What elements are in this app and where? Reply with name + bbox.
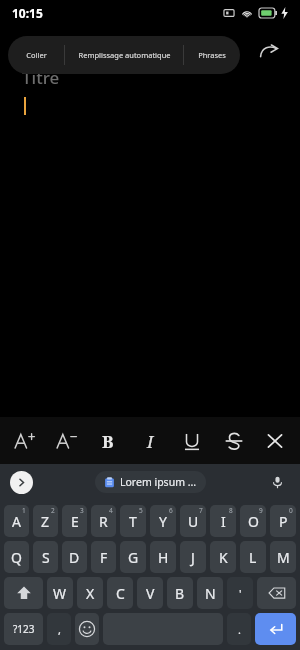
staticText: R bbox=[99, 512, 108, 531]
staticText: 8 bbox=[229, 506, 233, 515]
button[interactable]: C bbox=[107, 577, 133, 609]
button[interactable]: . bbox=[227, 613, 251, 645]
staticText: 9 bbox=[259, 506, 263, 515]
staticText: Coller bbox=[26, 50, 47, 60]
staticText: ' bbox=[239, 586, 242, 601]
button[interactable]: U bbox=[180, 505, 206, 537]
button[interactable]: J bbox=[180, 541, 206, 573]
button[interactable]: Phrases fréquentes bbox=[184, 36, 240, 74]
button[interactable]: I bbox=[210, 505, 236, 537]
button[interactable]: ' bbox=[227, 577, 253, 609]
button[interactable]: Effacer la mise en forme bbox=[258, 424, 292, 458]
staticText: . bbox=[238, 622, 241, 637]
button[interactable]: Rétablir bbox=[252, 34, 286, 68]
button[interactable]: M bbox=[270, 541, 296, 573]
staticText: D bbox=[69, 548, 80, 567]
staticText: U bbox=[188, 512, 199, 531]
button[interactable]: Barré bbox=[217, 424, 251, 458]
button[interactable]: G bbox=[120, 541, 146, 573]
button[interactable]: R bbox=[91, 505, 116, 537]
button[interactable]: W bbox=[47, 577, 73, 609]
staticText: X bbox=[86, 584, 95, 603]
button[interactable]: B bbox=[167, 577, 193, 609]
staticText: Lorem ipsum ... bbox=[120, 475, 197, 489]
staticText: J bbox=[191, 548, 195, 567]
button[interactable]: Q bbox=[4, 541, 29, 573]
staticText: 2 bbox=[51, 506, 55, 515]
staticText: A bbox=[12, 512, 21, 531]
staticText: 5 bbox=[139, 506, 143, 515]
staticText: 7 bbox=[199, 506, 203, 515]
button[interactable]: P bbox=[270, 505, 296, 537]
button[interactable]: Développer bbox=[10, 471, 33, 494]
button[interactable]: Remplissage automatique bbox=[65, 36, 183, 74]
staticText: Remplissage automatique bbox=[78, 50, 171, 60]
staticText: Y bbox=[159, 512, 167, 531]
staticText: Phrases fréquentes bbox=[184, 50, 240, 60]
staticText: , bbox=[58, 622, 61, 637]
staticText: E bbox=[71, 512, 79, 531]
staticText: 4 bbox=[109, 506, 113, 515]
staticText: Q bbox=[11, 548, 22, 567]
staticText: P bbox=[279, 512, 288, 531]
button[interactable]: F bbox=[91, 541, 116, 573]
button[interactable]: Saisie vocale bbox=[264, 469, 290, 495]
staticText: C bbox=[116, 584, 125, 603]
staticText: V bbox=[146, 584, 155, 603]
button[interactable]: O bbox=[240, 505, 266, 537]
staticText: H bbox=[158, 548, 169, 567]
staticText: W bbox=[53, 584, 67, 603]
button[interactable]: I bbox=[133, 424, 167, 458]
staticText: ?123 bbox=[13, 622, 35, 636]
button[interactable]: Lorem ipsum ... bbox=[95, 471, 206, 493]
button[interactable]: K bbox=[210, 541, 236, 573]
staticText: 0 bbox=[289, 506, 293, 515]
button[interactable]: H bbox=[150, 541, 176, 573]
button[interactable]: X bbox=[77, 577, 103, 609]
staticText: 6 bbox=[169, 506, 173, 515]
staticText: 10:15 bbox=[12, 5, 43, 21]
button[interactable]: Réduire la taille bbox=[50, 424, 84, 458]
button[interactable]: S bbox=[33, 541, 58, 573]
button[interactable]: Supprimer bbox=[257, 577, 296, 609]
staticText: F bbox=[100, 548, 108, 567]
staticText: O bbox=[248, 512, 259, 531]
button[interactable]: , bbox=[47, 613, 71, 645]
staticText: Z bbox=[41, 512, 50, 531]
staticText: T bbox=[129, 512, 137, 531]
staticText: I bbox=[221, 512, 226, 531]
button[interactable]: V bbox=[137, 577, 163, 609]
button[interactable]: Z bbox=[33, 505, 58, 537]
staticText: B bbox=[175, 584, 185, 603]
button[interactable]: Souligner bbox=[175, 424, 209, 458]
button[interactable]: Entrée bbox=[255, 613, 296, 645]
button[interactable]: Majuscule bbox=[4, 577, 43, 609]
button[interactable]: Coller bbox=[8, 36, 64, 74]
button[interactable]: Emoji bbox=[75, 613, 99, 645]
staticText: L bbox=[249, 548, 257, 567]
button[interactable]: Y bbox=[150, 505, 176, 537]
button[interactable]: L bbox=[240, 541, 266, 573]
staticText: Titre bbox=[22, 66, 60, 89]
button[interactable]: N bbox=[197, 577, 223, 609]
button[interactable]: E bbox=[62, 505, 87, 537]
staticText: M bbox=[277, 548, 290, 567]
button[interactable]: ?123 bbox=[4, 613, 43, 645]
staticText: B bbox=[102, 430, 114, 453]
button[interactable]: B bbox=[91, 424, 125, 458]
button[interactable]: A bbox=[4, 505, 29, 537]
staticText: N bbox=[205, 584, 216, 603]
staticText: G bbox=[128, 548, 139, 567]
staticText: 1 bbox=[22, 506, 26, 515]
staticText: I bbox=[147, 430, 154, 453]
staticText: S bbox=[42, 548, 50, 567]
button[interactable]: Augmenter la taille bbox=[8, 424, 42, 458]
button[interactable]: D bbox=[62, 541, 87, 573]
staticText: K bbox=[219, 548, 228, 567]
staticText: 3 bbox=[80, 506, 84, 515]
button[interactable]: T bbox=[120, 505, 146, 537]
